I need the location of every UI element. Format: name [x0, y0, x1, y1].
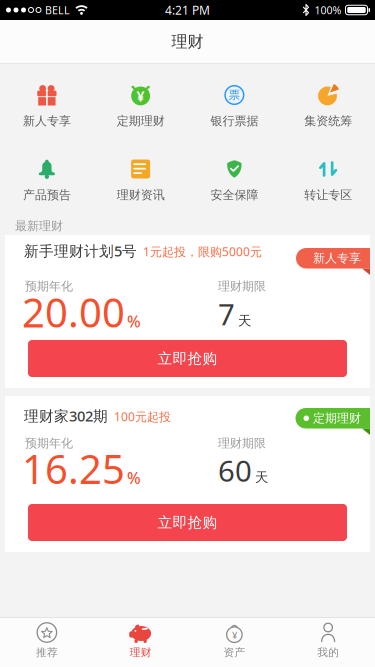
- staticText: 最新理财: [15, 219, 63, 233]
- staticText: 理财家302期: [24, 406, 108, 425]
- staticText: 4:21 PM: [165, 2, 210, 18]
- button[interactable]: 立即抢购: [28, 504, 347, 541]
- staticText: 天: [255, 469, 268, 486]
- staticText: 100%: [314, 3, 341, 17]
- staticText: 立即抢购: [157, 349, 217, 367]
- staticText: 新人专享: [23, 114, 71, 128]
- button[interactable]: 理财家302期: [5, 396, 370, 552]
- staticText: 定期理财: [313, 411, 361, 426]
- staticText: 7: [218, 294, 235, 333]
- staticText: 银行票据: [210, 114, 258, 128]
- staticText: %: [127, 467, 141, 488]
- staticText: 定期理财: [117, 114, 165, 128]
- staticText: 100元起投: [114, 409, 171, 424]
- staticText: 安全保障: [210, 188, 258, 202]
- staticText: 理财: [130, 646, 152, 659]
- staticText: 资产: [223, 646, 245, 659]
- button[interactable]: ¥: [94, 84, 188, 128]
- staticText: 16.25: [22, 442, 125, 495]
- staticText: 产品预告: [23, 188, 71, 202]
- button[interactable]: 理财资讯: [94, 158, 188, 202]
- staticText: 理财资讯: [117, 188, 165, 202]
- staticText: 20.00: [22, 285, 125, 339]
- staticText: 理财期限: [218, 436, 266, 451]
- button[interactable]: 理财: [94, 618, 188, 667]
- staticText: 推荐: [36, 646, 58, 659]
- button[interactable]: 产品预告: [0, 158, 94, 202]
- button[interactable]: ¥: [187, 618, 281, 667]
- staticText: 天: [238, 313, 251, 329]
- staticText: 预期年化: [25, 436, 73, 451]
- staticText: 1元起投，限购5000元: [143, 244, 262, 259]
- staticText: 理财: [171, 32, 203, 52]
- staticText: 票: [225, 83, 244, 106]
- staticText: 集资统筹: [304, 114, 352, 128]
- staticText: 转让专区: [304, 188, 352, 202]
- button[interactable]: 新人专享: [0, 84, 94, 128]
- staticText: 60: [218, 451, 252, 490]
- staticText: %: [127, 311, 141, 332]
- button[interactable]: 票: [187, 84, 281, 128]
- button[interactable]: 新手理财计划5号: [5, 235, 370, 388]
- button[interactable]: 安全保障: [187, 158, 281, 202]
- button[interactable]: 转让专区: [281, 158, 375, 202]
- button[interactable]: 我的: [281, 618, 375, 667]
- staticText: ¥: [232, 629, 237, 641]
- staticText: 立即抢购: [157, 513, 217, 531]
- button[interactable]: 立即抢购: [28, 340, 347, 377]
- staticText: 预期年化: [25, 279, 73, 294]
- staticText: ¥: [134, 81, 147, 111]
- staticText: 理财期限: [218, 279, 266, 294]
- button[interactable]: 集资统筹: [281, 84, 375, 128]
- staticText: 新人专享: [313, 251, 361, 266]
- staticText: BELL: [45, 3, 70, 17]
- button[interactable]: 推荐: [0, 618, 94, 667]
- staticText: 新手理财计划5号: [24, 241, 137, 260]
- staticText: 我的: [317, 646, 339, 659]
